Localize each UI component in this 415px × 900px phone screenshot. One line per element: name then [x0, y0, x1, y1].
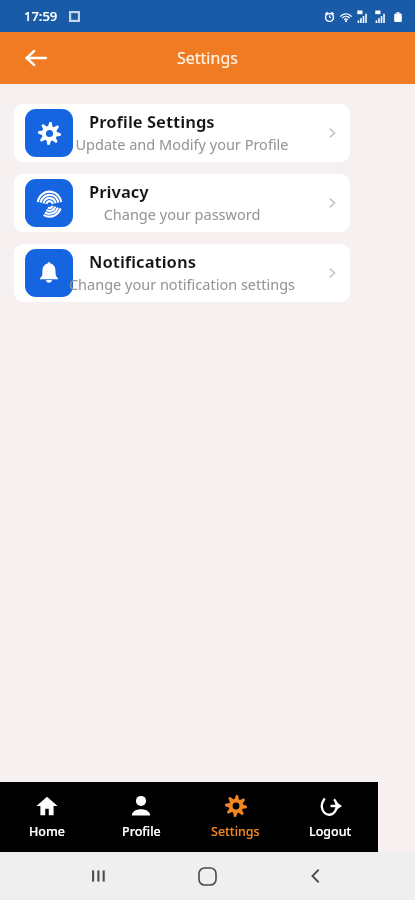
button[interactable]: Privacy: [14, 174, 350, 232]
staticText: Settings: [177, 47, 238, 69]
staticText: Change your password: [32, 204, 332, 224]
button[interactable]: Settings: [188, 782, 283, 852]
staticText: Privacy: [89, 180, 149, 202]
staticText: 17:59: [24, 7, 58, 25]
staticText: Profile Settings: [89, 110, 215, 132]
staticText: Logout: [309, 823, 352, 840]
staticText: Settings: [211, 823, 260, 840]
staticText: Home: [29, 823, 66, 840]
staticText: Change your notification settings: [32, 274, 332, 294]
staticText: Profile: [122, 823, 161, 840]
staticText: Notifications: [89, 250, 196, 272]
button[interactable]: Notifications: [14, 244, 350, 302]
button[interactable]: Back: [18, 40, 54, 76]
button[interactable]: Profile: [94, 782, 188, 852]
button[interactable]: Logout: [283, 782, 378, 852]
button[interactable]: Home: [0, 782, 94, 852]
button[interactable]: Profile Settings: [14, 104, 350, 162]
staticText: Update and Modify your Profile: [32, 134, 332, 154]
